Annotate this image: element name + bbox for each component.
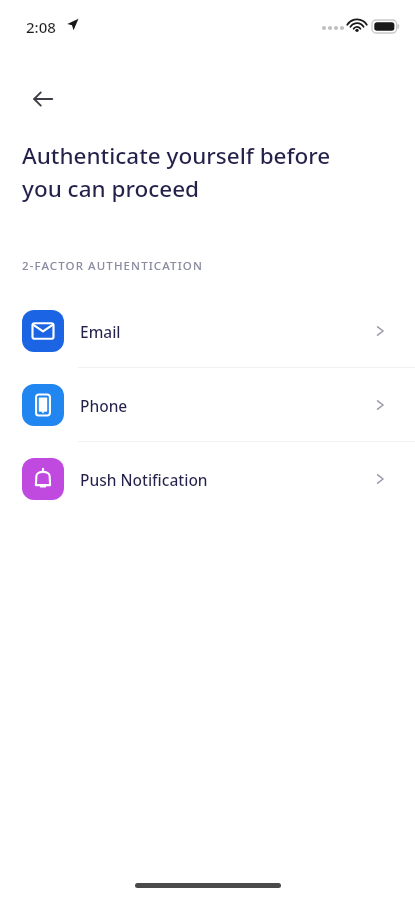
staticText: Push Notification (80, 469, 208, 490)
staticText: 2:08 (26, 17, 56, 37)
staticText: Phone (80, 395, 128, 416)
button[interactable]: Back (22, 78, 64, 120)
staticText: 2-FACTOR AUTHENTICATION (22, 258, 203, 274)
button[interactable]: Email (0, 294, 415, 368)
staticText: Email (80, 321, 121, 342)
button[interactable]: Push Notification (0, 442, 415, 516)
staticText: Authenticate yourself before you can pro… (22, 140, 331, 203)
button[interactable]: Phone (0, 368, 415, 442)
